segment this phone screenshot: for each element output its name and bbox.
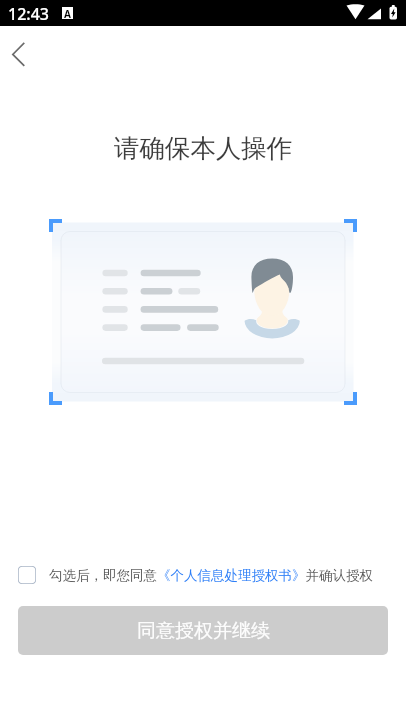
button[interactable]: Back [2,35,36,75]
staticText: 12:43 [8,3,49,25]
staticText: 请确保本人操作 [0,132,406,164]
button[interactable]: 同意授权并继续 [18,606,388,655]
staticText: A [64,7,71,19]
staticText: 勾选后，即您同意《个人信息处理授权书》并确认授权 [49,567,373,584]
button[interactable]: Agree to authorization [18,566,36,584]
staticText: 同意授权并继续 [137,619,270,643]
